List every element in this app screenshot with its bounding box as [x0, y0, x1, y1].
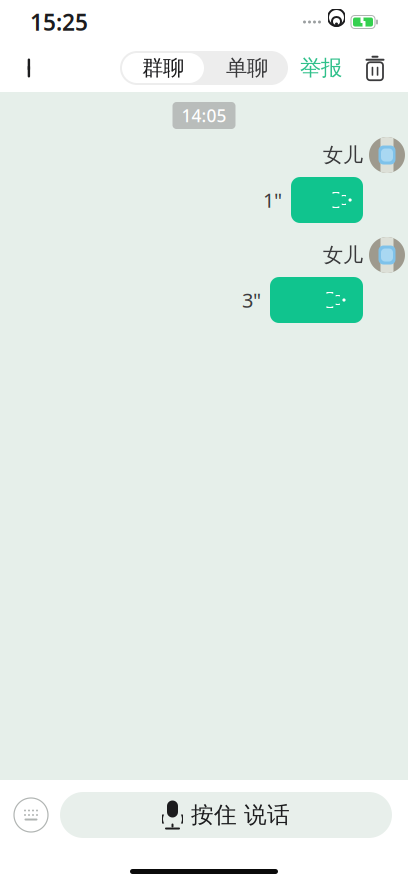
button[interactable]: 单聊 [206, 51, 288, 85]
staticText: 1" [263, 187, 282, 213]
staticText: 群聊 [142, 55, 184, 81]
staticText: 单聊 [226, 55, 268, 81]
button[interactable]: 播放语音 3" [270, 277, 363, 323]
staticText: 14:05 [181, 104, 226, 127]
staticText: 15:25 [30, 7, 88, 37]
button[interactable]: 按住 说话 [60, 792, 392, 838]
button[interactable]: 切换键盘 [14, 798, 48, 832]
button[interactable]: 播放语音 1" [291, 177, 363, 223]
staticText: 按住 说话 [191, 801, 290, 829]
button[interactable]: 返回 [14, 46, 48, 90]
staticText: 3" [242, 287, 261, 313]
staticText: 女儿 [323, 243, 363, 267]
button[interactable]: 删除 [342, 46, 390, 90]
staticText: 举报 [300, 55, 342, 81]
staticText: 女儿 [323, 143, 363, 167]
button[interactable]: 举报 [300, 46, 342, 90]
button[interactable]: 群聊 [120, 51, 206, 85]
